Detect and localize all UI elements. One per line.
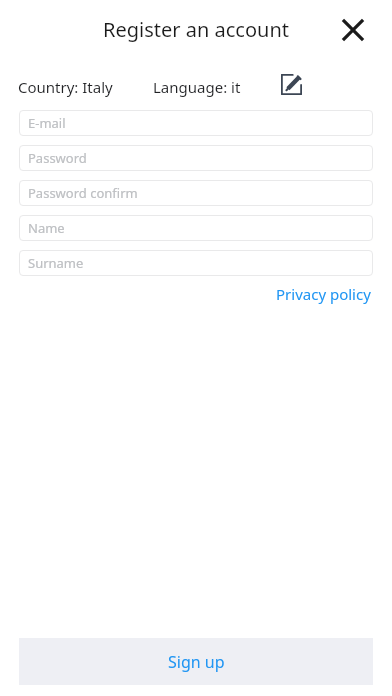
staticText: Surname	[28, 254, 84, 272]
staticText: Country: Italy	[18, 77, 113, 97]
button[interactable]: Close	[331, 8, 375, 52]
button[interactable]: Password confirm	[19, 180, 373, 206]
staticText: Password confirm	[28, 184, 138, 202]
button[interactable]: Privacy policy	[274, 280, 373, 308]
button[interactable]: E-mail	[19, 110, 373, 136]
button[interactable]: Sign up	[19, 638, 373, 685]
button[interactable]: Name	[19, 215, 373, 241]
staticText: E-mail	[28, 114, 66, 132]
staticText: Sign up	[168, 651, 225, 673]
staticText: Name	[28, 219, 65, 237]
staticText: Privacy policy	[276, 284, 371, 304]
staticText: Language: it	[153, 77, 241, 97]
button[interactable]: Surname	[19, 250, 373, 276]
button[interactable]: Password	[19, 145, 373, 171]
staticText: Password	[28, 149, 87, 167]
staticText: Register an account	[103, 16, 289, 43]
button[interactable]: Edit country and language	[274, 67, 308, 101]
